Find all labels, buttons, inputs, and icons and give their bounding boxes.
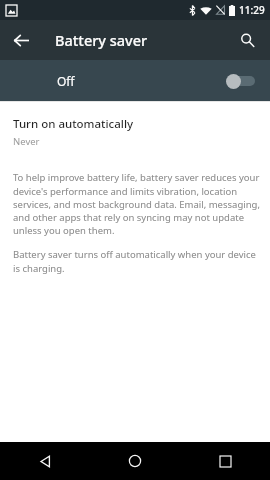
staticText: Battery saver [55, 30, 148, 50]
button[interactable]: Home [90, 442, 180, 480]
staticText: Off [57, 73, 75, 89]
button[interactable]: Recent apps [180, 442, 270, 480]
staticText: 11:29 [239, 3, 265, 17]
button[interactable]: Search [231, 24, 263, 56]
button[interactable]: Navigate up [5, 24, 37, 56]
button[interactable]: Off [0, 60, 270, 101]
staticText: To help improve battery life, battery sa… [13, 171, 261, 236]
button[interactable]: Back [0, 442, 90, 480]
staticText: Never [13, 135, 40, 148]
staticText: Turn on automatically [13, 116, 134, 132]
staticText: Battery saver turns off automatically wh… [13, 248, 261, 274]
